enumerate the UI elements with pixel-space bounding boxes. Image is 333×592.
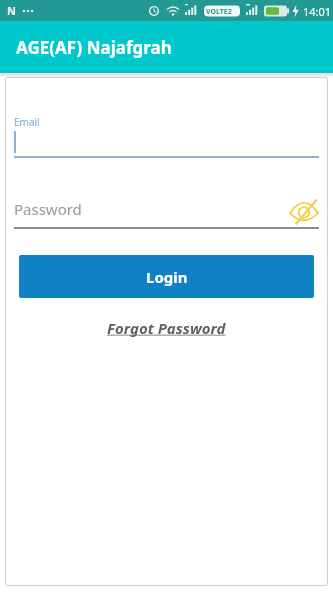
button[interactable] <box>289 201 319 223</box>
staticText: VOLTE2 <box>206 7 232 17</box>
staticText: AGE(AF) Najafgrah <box>16 36 172 59</box>
button[interactable]: Forgot Password <box>107 318 226 338</box>
staticText: N <box>7 3 16 18</box>
button[interactable]: Login <box>19 255 314 298</box>
staticText: 14:01 <box>303 4 332 19</box>
staticText: Password <box>14 199 82 219</box>
button[interactable] <box>14 131 319 153</box>
staticText: Email <box>14 115 40 129</box>
staticText: Login <box>146 267 188 287</box>
button[interactable]: Password <box>14 158 319 229</box>
